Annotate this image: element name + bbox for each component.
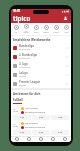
staticText: Borussia Dortmund [25,111,46,114]
staticText: Sport [34,31,39,33]
staticText: Premier League [19,80,41,84]
staticText: 3.80 [39,131,44,134]
button[interactable]: 3.80 [32,130,50,135]
staticText: Fußball [43,31,49,33]
button[interactable]: Mehr [61,23,71,35]
staticText: Bundesliga [19,44,34,48]
button[interactable]: LaLiga [11,70,71,79]
staticText: LaLiga [19,71,28,75]
staticText: Deutschland [19,57,31,60]
button[interactable]: Live [35,137,47,142]
staticText: Casino [53,31,59,33]
button[interactable]: Mehr [59,137,71,142]
button[interactable]: Premier League [11,79,71,88]
button[interactable]: 3.80 [32,115,50,120]
staticText: VfB Stuttgart [25,107,39,110]
staticText: Live [14,31,18,33]
staticText: Fußball [13,98,23,102]
button[interactable]: Sa. [11,121,71,136]
button[interactable]: 2.90 [51,115,69,120]
button[interactable]: Wettschein [47,137,59,142]
button[interactable]: 3. Liga [11,61,71,70]
staticText: VfB Stuttgart [25,122,39,125]
staticText: Deutschland [19,48,31,51]
button[interactable]: Sport [23,137,35,142]
button[interactable]: 2.35 [13,130,31,135]
button[interactable]: Casino [51,23,61,35]
staticText: Sa. [13,108,16,110]
staticText: England [19,84,27,87]
staticText: Spanien [19,75,27,78]
button[interactable]: Profil [61,14,69,22]
staticText: 2.35 [20,116,25,119]
button[interactable]: Start [11,137,23,142]
button[interactable]: Sa. [11,106,71,121]
staticText: Am besten für dich [13,92,41,96]
button[interactable]: 2. Bundesliga [11,52,71,61]
staticText: 15:30 [13,125,18,128]
button[interactable]: Fußball [41,23,51,35]
staticText: 16:02 [13,9,21,13]
button[interactable]: Sport [31,23,41,35]
button[interactable]: 2.90 [51,130,69,135]
staticText: 15:30 [13,110,18,113]
button[interactable]: 2.35 [13,115,31,120]
staticText: 3.80 [39,116,44,119]
staticText: Empfohlene Wettbewerbe [13,38,51,42]
staticText: 2. Bundesliga [19,53,37,57]
staticText: 3. Liga [19,62,28,66]
staticText: 2.35 [20,131,25,134]
button[interactable]: Bundesliga [11,43,71,52]
staticText: 2.90 [58,131,63,134]
button[interactable]: Live [11,23,21,35]
staticText: Borussia Dortmund [25,126,46,129]
button[interactable]: Top Wetten [21,23,31,35]
staticText: tipico [13,14,31,22]
staticText: Mehr [64,31,69,33]
staticText: Deutschland [19,66,31,69]
staticText: Top Wetten [23,30,29,34]
staticText: Sa. [13,123,16,125]
staticText: 2.90 [58,116,63,119]
